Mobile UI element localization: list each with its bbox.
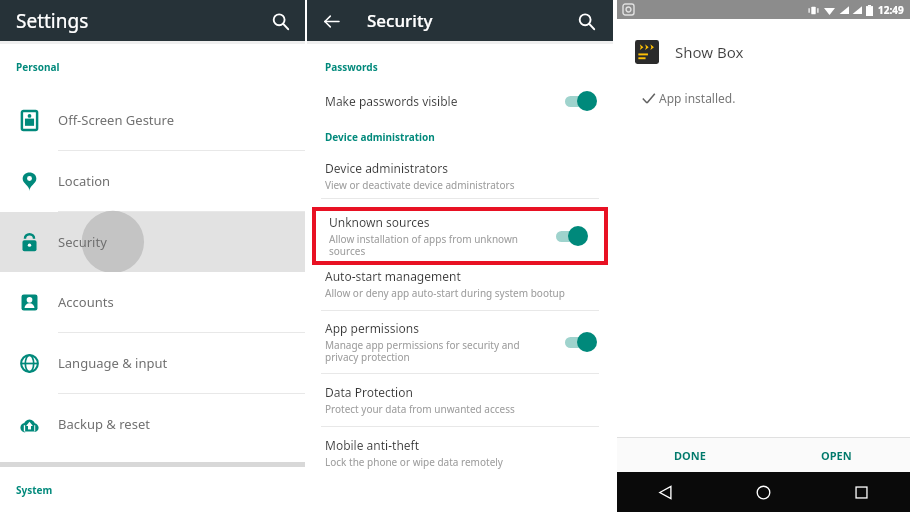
button[interactable]: Accounts [0,272,305,332]
staticText: Unknown sources [329,214,430,230]
staticText: OPEN [821,448,852,463]
button[interactable]: Auto-start management [307,258,613,310]
button[interactable]: Data Protection [307,374,613,426]
button[interactable]: Backup & reset [0,394,305,454]
button[interactable]: App permissions [307,311,613,373]
staticText: DONE [674,448,706,463]
staticText: Allow or deny app auto-start during syst… [325,286,565,300]
staticText: Location [58,172,111,190]
button[interactable]: Off-Screen Gesture [0,90,305,150]
staticText: Device administrators [325,160,448,176]
staticText: Off-Screen Gesture [58,111,175,129]
staticText: Personal [16,60,60,74]
staticText: App installed. [659,90,736,106]
button[interactable]: Mobile anti-theft [307,427,613,479]
staticText: Backup & reset [58,415,150,433]
staticText: Auto-start management [325,268,461,284]
staticText: Security [367,9,433,32]
button[interactable]: Home [714,472,812,512]
button[interactable]: Make passwords visible [307,84,613,118]
button[interactable]: Location [0,151,305,211]
staticText: Protect your data from unwanted access [325,402,515,416]
staticText: System [16,483,53,497]
button[interactable]: OPEN [763,438,910,472]
staticText: Show Box [675,42,744,62]
button[interactable]: Device administrators [307,154,613,198]
button[interactable]: Back [617,472,714,512]
button[interactable]: Security [0,212,305,272]
staticText: Security [58,233,107,251]
button[interactable]: Search [571,6,601,36]
button[interactable]: Search [265,6,295,36]
staticText: Settings [16,8,89,34]
staticText: Manage app permissions for security and … [325,338,520,364]
staticText: Make passwords visible [325,93,458,109]
button[interactable]: Recents [812,472,910,512]
staticText: Data Protection [325,384,413,400]
staticText: Device administration [325,130,435,144]
staticText: App permissions [325,320,419,336]
staticText: Lock the phone or wipe data remotely [325,455,503,469]
button[interactable]: Back [317,7,345,35]
staticText: Allow installation of apps from unknown … [329,232,518,258]
button[interactable]: Unknown sources [316,211,604,261]
staticText: Mobile anti-theft [325,437,420,453]
staticText: View or deactivate device administrators [325,178,515,192]
button[interactable]: Language & input [0,333,305,393]
button[interactable]: DONE [617,438,763,472]
staticText: Language & input [58,354,168,372]
staticText: Accounts [58,293,114,311]
staticText: Passwords [325,60,378,74]
staticText: 12:49 [878,3,904,17]
